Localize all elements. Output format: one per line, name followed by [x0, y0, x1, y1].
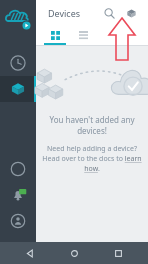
button[interactable]: Grid view: [44, 28, 66, 45]
button[interactable]: Home logo: [0, 0, 36, 36]
button[interactable]: Back: [22, 245, 38, 261]
button[interactable]: Devices: [0, 76, 36, 102]
button[interactable]: List view: [72, 28, 94, 45]
staticText: You haven't added any devices!: [36, 114, 148, 136]
button[interactable]: Need help adding a device? Head over to …: [40, 144, 144, 174]
button[interactable]: Search: [100, 4, 118, 22]
button[interactable]: Help: [0, 156, 36, 182]
button[interactable]: Add device: [122, 4, 140, 22]
button[interactable]: Dashboard: [0, 50, 36, 76]
button[interactable]: Notifications: [0, 182, 36, 208]
button[interactable]: Account: [0, 208, 36, 234]
staticText: Devices: [48, 7, 81, 19]
button[interactable]: Home: [66, 245, 82, 261]
staticText: Need help adding a device? Head over to …: [40, 144, 144, 174]
button[interactable]: Recent apps: [110, 245, 126, 261]
